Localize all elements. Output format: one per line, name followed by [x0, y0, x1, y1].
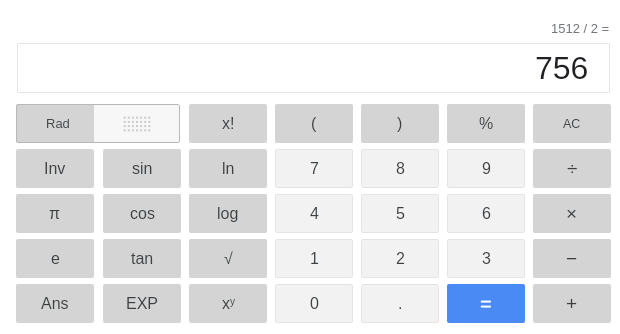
staticText: AC [563, 117, 581, 131]
staticText: 1 [310, 250, 319, 268]
button[interactable]: 8 [361, 149, 439, 188]
staticText: √ [224, 250, 233, 268]
button[interactable]: ln [189, 149, 267, 188]
staticText: % [479, 115, 494, 133]
staticText: 5 [396, 205, 405, 223]
staticText: e [51, 250, 60, 268]
button[interactable]: sin [103, 149, 181, 188]
staticText: log [217, 205, 239, 223]
staticText: 8 [396, 160, 405, 178]
staticText: 1512 / 2 = [551, 21, 610, 36]
staticText: 2 [396, 250, 405, 268]
button[interactable]: EXP [103, 284, 181, 323]
staticText: 4 [310, 205, 319, 223]
button[interactable]: ( [275, 104, 353, 143]
button[interactable]: AC [533, 104, 611, 143]
button[interactable]: × [533, 194, 611, 233]
button[interactable]: 7 [275, 149, 353, 188]
button[interactable]: Inv [16, 149, 94, 188]
button[interactable]: 2 [361, 239, 439, 278]
button[interactable]: π [16, 194, 94, 233]
staticText: Rad [46, 116, 70, 131]
button[interactable]: cos [103, 194, 181, 233]
staticText: ÷ [567, 158, 578, 179]
button[interactable]: tan [103, 239, 181, 278]
button[interactable]: ) [361, 104, 439, 143]
button[interactable]: 4 [275, 194, 353, 233]
button[interactable]: 9 [447, 149, 525, 188]
button[interactable]: + [533, 284, 611, 323]
button[interactable]: % [447, 104, 525, 143]
button[interactable]: Rad [16, 104, 94, 143]
staticText: . [398, 295, 403, 313]
staticText: 6 [482, 205, 491, 223]
staticText: EXP [126, 295, 159, 313]
staticText: 0 [310, 295, 319, 313]
staticText: xy [222, 295, 235, 313]
button[interactable]: √ [189, 239, 267, 278]
staticText: × [566, 203, 578, 224]
staticText: 3 [482, 250, 491, 268]
button[interactable]: e [16, 239, 94, 278]
staticText: tan [131, 250, 154, 268]
button[interactable]: Ans [16, 284, 94, 323]
staticText: 7 [310, 160, 319, 178]
button[interactable]: x! [189, 104, 267, 143]
button[interactable]: 3 [447, 239, 525, 278]
button[interactable]: Keypad [94, 104, 180, 143]
button[interactable]: ÷ [533, 149, 611, 188]
staticText: − [566, 248, 578, 269]
button[interactable]: − [533, 239, 611, 278]
staticText: Ans [41, 295, 69, 313]
button[interactable]: xy [189, 284, 267, 323]
button[interactable]: 5 [361, 194, 439, 233]
staticText: 9 [482, 160, 491, 178]
button[interactable]: 0 [275, 284, 353, 323]
staticText: Inv [44, 160, 66, 178]
staticText: ln [222, 160, 235, 178]
button[interactable]: 6 [447, 194, 525, 233]
staticText: 756 [535, 50, 589, 86]
staticText: π [49, 205, 61, 223]
staticText: ) [397, 115, 403, 133]
staticText: sin [132, 160, 153, 178]
staticText: cos [130, 205, 155, 223]
button[interactable]: = [447, 284, 525, 323]
staticText: x! [222, 115, 235, 133]
staticText: + [566, 293, 578, 314]
button[interactable]: log [189, 194, 267, 233]
staticText: = [480, 293, 492, 315]
button[interactable]: . [361, 284, 439, 323]
staticText: ( [311, 115, 317, 133]
button[interactable]: 1 [275, 239, 353, 278]
